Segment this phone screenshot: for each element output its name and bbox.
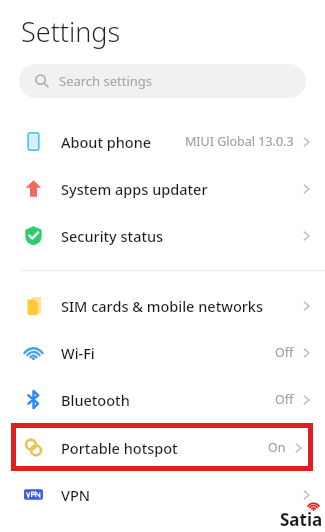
button[interactable]: System apps updater [0, 165, 325, 212]
staticText: Wi-Fi [61, 343, 95, 363]
button[interactable]: About phone [0, 118, 325, 165]
staticText: On [268, 439, 286, 456]
staticText: Portable hotspot [61, 438, 178, 458]
staticText: Search settings [59, 72, 153, 90]
button[interactable]: SIM cards & mobile networks [0, 282, 325, 329]
button[interactable]: Security status [0, 212, 325, 259]
staticText: Security status [61, 226, 164, 246]
staticText: Settings [21, 13, 121, 50]
staticText: MIUI Global 13.0.3 [185, 133, 294, 150]
button[interactable]: Portable hotspot [11, 423, 313, 471]
staticText: SIM cards & mobile networks [61, 296, 264, 316]
staticText: About phone [61, 132, 152, 152]
staticText: System apps updater [61, 179, 208, 199]
button[interactable]: Wi-Fi [0, 329, 325, 376]
button[interactable]: VPN [0, 471, 325, 518]
staticText: Bluetooth [61, 390, 130, 410]
button[interactable]: Search [19, 64, 306, 98]
staticText: Off [275, 391, 294, 408]
staticText: Satia [280, 508, 323, 531]
staticText: Off [275, 344, 294, 361]
other: Search [35, 74, 49, 88]
button[interactable]: Bluetooth [0, 376, 325, 423]
staticText: VPN [61, 485, 91, 505]
